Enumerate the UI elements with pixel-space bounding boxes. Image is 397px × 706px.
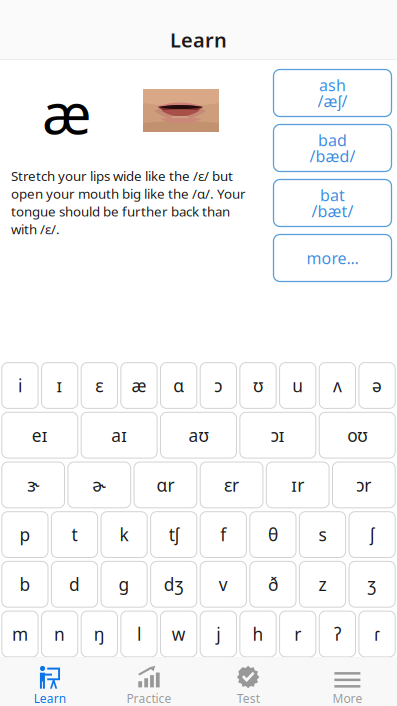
staticText: more... xyxy=(306,247,358,269)
button[interactable]: ʃ xyxy=(349,512,395,557)
staticText: Practice xyxy=(126,690,171,706)
staticText: ɔɪ xyxy=(271,424,285,447)
button[interactable]: Test xyxy=(198,657,298,706)
staticText: ɪr xyxy=(291,473,304,496)
staticText: ʌ xyxy=(333,374,342,397)
button[interactable]: ð xyxy=(250,561,296,607)
staticText: Learn xyxy=(34,690,66,706)
staticText: More xyxy=(332,690,362,706)
staticText: θ xyxy=(268,523,278,546)
button[interactable]: ɛr xyxy=(200,462,263,508)
staticText: r xyxy=(294,622,301,645)
button[interactable]: more... xyxy=(273,234,391,281)
button[interactable]: v xyxy=(200,561,246,607)
staticText: ɑr xyxy=(156,473,174,496)
staticText: ŋ xyxy=(94,622,105,645)
button[interactable]: ɚ xyxy=(68,462,131,508)
button[interactable]: tʃ xyxy=(151,512,197,557)
button[interactable]: dʒ xyxy=(151,561,197,607)
staticText: Test xyxy=(237,690,260,706)
button[interactable]: j xyxy=(200,611,236,657)
staticText: ɚ xyxy=(92,473,106,496)
button[interactable]: aɪ xyxy=(81,412,157,458)
button[interactable]: h xyxy=(240,611,276,657)
button[interactable]: n xyxy=(41,611,78,657)
button[interactable]: ʊ xyxy=(240,363,276,408)
button[interactable]: Learn xyxy=(0,657,99,706)
button[interactable]: Practice xyxy=(99,657,198,706)
button[interactable]: ŋ xyxy=(81,611,117,657)
staticText: m xyxy=(12,622,28,645)
button[interactable]: ʔ xyxy=(319,611,355,657)
button[interactable]: eɪ xyxy=(2,412,78,458)
staticText: ɛ xyxy=(95,374,103,397)
button[interactable]: f xyxy=(200,512,246,557)
staticText: bat xyxy=(320,184,345,206)
staticText: aɪ xyxy=(111,424,127,447)
button[interactable]: aʊ xyxy=(160,412,236,458)
staticText: /æʃ/ xyxy=(317,90,347,112)
staticText: w xyxy=(172,622,186,645)
button[interactable]: ʌ xyxy=(319,363,355,408)
staticText: i xyxy=(18,374,22,397)
button[interactable]: ɔ xyxy=(200,363,236,408)
button[interactable]: ɪ xyxy=(41,363,78,408)
button[interactable]: z xyxy=(299,561,346,607)
button[interactable]: w xyxy=(160,611,197,657)
button[interactable]: k xyxy=(101,512,147,557)
staticText: g xyxy=(119,573,130,596)
button[interactable]: r xyxy=(280,611,316,657)
button[interactable]: p xyxy=(2,512,48,557)
button[interactable]: æ xyxy=(121,363,157,408)
staticText: t xyxy=(71,523,77,546)
button[interactable]: u xyxy=(280,363,316,408)
button[interactable]: s xyxy=(299,512,346,557)
button[interactable]: m xyxy=(2,611,38,657)
staticText: Learn xyxy=(170,26,227,53)
button[interactable]: ɾ xyxy=(359,611,395,657)
staticText: ʊ xyxy=(253,374,263,397)
staticText: d xyxy=(69,573,80,596)
staticText: j xyxy=(216,622,220,645)
button[interactable]: ash xyxy=(273,69,391,116)
button[interactable]: θ xyxy=(250,512,296,557)
staticText: ʒ xyxy=(368,573,377,596)
staticText: oʊ xyxy=(347,424,367,447)
button[interactable]: oʊ xyxy=(319,412,395,458)
button[interactable]: ɔr xyxy=(332,462,395,508)
button[interactable]: l xyxy=(121,611,157,657)
button[interactable]: ə xyxy=(359,363,395,408)
button[interactable]: d xyxy=(51,561,98,607)
button[interactable]: ɛ xyxy=(81,363,117,408)
staticText: æ xyxy=(42,74,92,150)
staticText: tʃ xyxy=(169,523,179,546)
staticText: ash xyxy=(319,74,346,96)
staticText: ɔr xyxy=(356,473,371,496)
staticText: k xyxy=(120,523,129,546)
button[interactable]: ɔɪ xyxy=(240,412,316,458)
button[interactable]: g xyxy=(101,561,147,607)
staticText: dʒ xyxy=(164,573,184,596)
button[interactable]: bat xyxy=(273,179,391,226)
button[interactable]: t xyxy=(51,512,98,557)
staticText: ɔ xyxy=(214,374,222,397)
staticText: n xyxy=(54,622,65,645)
staticText: p xyxy=(19,523,30,546)
staticText: f xyxy=(220,523,226,546)
button[interactable]: ɑ xyxy=(160,363,197,408)
staticText: bad xyxy=(318,129,347,151)
button[interactable]: b xyxy=(2,561,48,607)
button[interactable]: ɪr xyxy=(266,462,329,508)
staticText: b xyxy=(19,573,30,596)
staticText: z xyxy=(318,573,326,596)
button[interactable]: More xyxy=(298,657,397,706)
button[interactable]: bad xyxy=(273,124,391,171)
button[interactable]: ɝ xyxy=(2,462,64,508)
staticText: v xyxy=(219,573,228,596)
staticText: ɑ xyxy=(173,374,184,397)
staticText: ɾ xyxy=(374,622,380,645)
button[interactable]: ʒ xyxy=(349,561,395,607)
staticText: ɪ xyxy=(57,374,63,397)
button[interactable]: i xyxy=(2,363,38,408)
button[interactable]: ɑr xyxy=(134,462,197,508)
